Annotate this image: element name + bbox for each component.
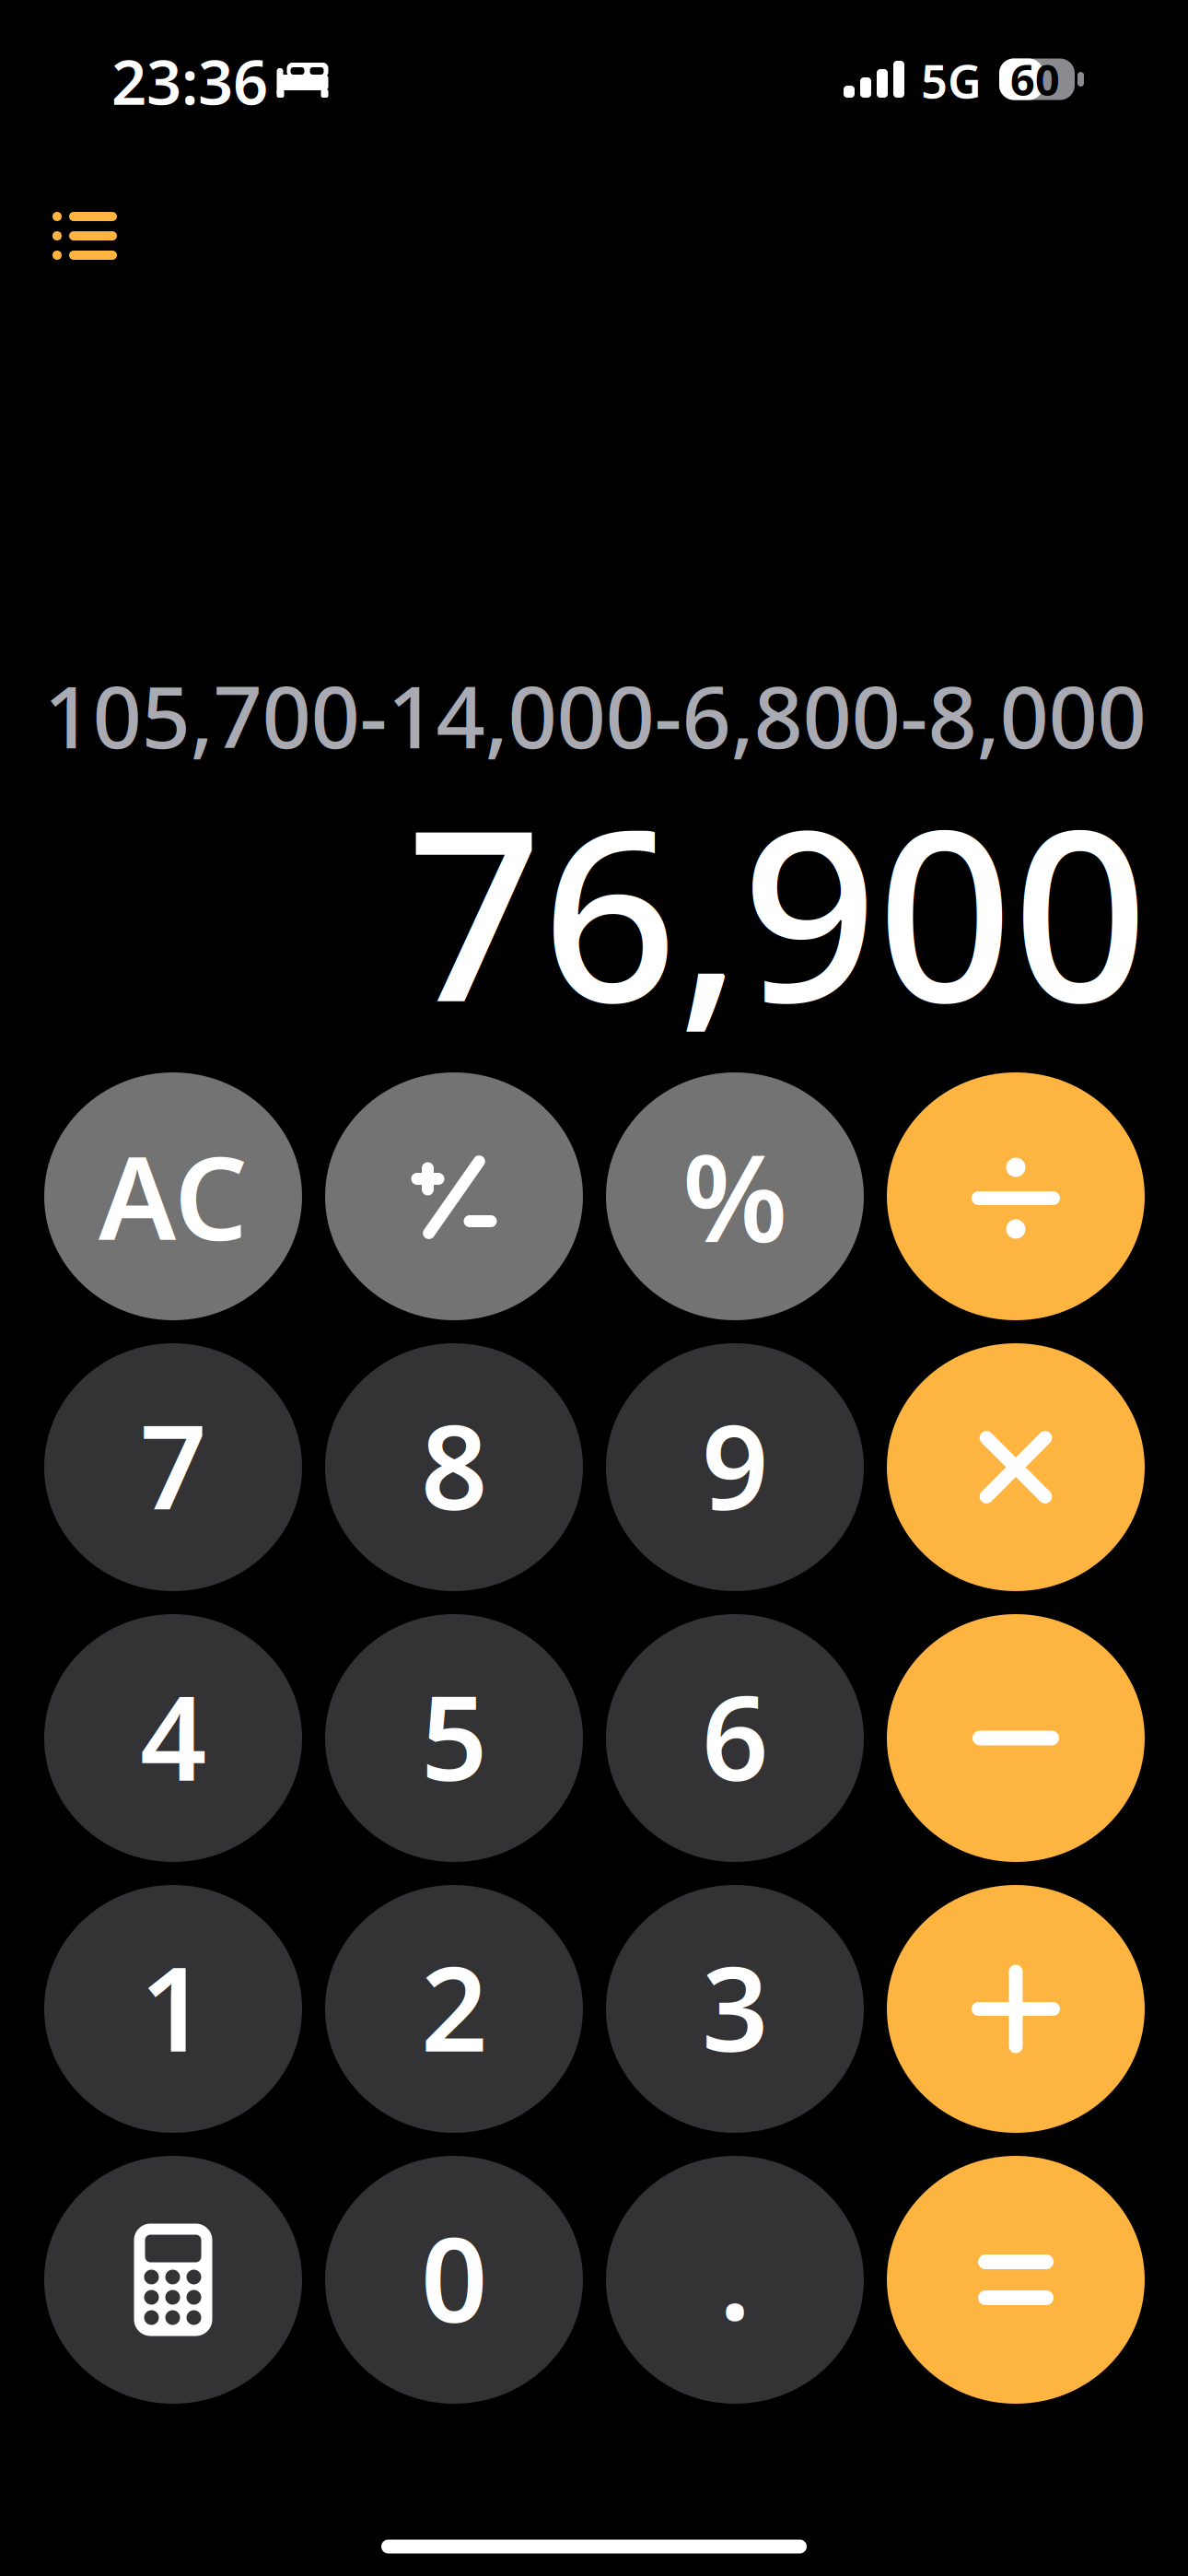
button[interactable]: Divide [887,1072,1145,1320]
button[interactable]: 7 [44,1343,302,1591]
staticText: 0 [421,2200,487,2355]
staticText: 4 [140,1658,206,1813]
staticText: 3 [702,1929,768,2084]
staticText: 76,900 [407,752,1148,1067]
button[interactable]: 2 [325,1885,583,2133]
button[interactable]: Plus minus [325,1072,583,1320]
button[interactable]: Subtract [887,1614,1145,1862]
button[interactable]: AC [44,1072,302,1320]
button[interactable]: Equals [887,2156,1145,2404]
button[interactable]: Add [887,1885,1145,2133]
staticText: AC [99,1119,248,1272]
staticText: 1 [140,1929,206,2084]
button[interactable]: 1 [44,1885,302,2133]
staticText: 2 [421,1929,487,2084]
staticText: % [682,1115,787,1275]
button[interactable]: 9 [606,1343,864,1591]
button[interactable]: Multiply [887,1343,1145,1591]
staticText: 9 [702,1387,768,1542]
button[interactable]: 3 [606,1885,864,2133]
staticText: 5G [921,49,982,111]
button[interactable]: History [16,171,154,300]
staticText: 23:36 [111,40,268,122]
button[interactable]: % [606,1072,864,1320]
staticText: 8 [421,1387,487,1542]
button[interactable]: Calculator [44,2156,302,2404]
staticText: 5 [421,1658,487,1813]
button[interactable]: 8 [325,1343,583,1591]
button[interactable]: 6 [606,1614,864,1862]
staticText: 7 [140,1387,206,1542]
staticText: . [719,2197,751,2352]
button[interactable]: 4 [44,1614,302,1862]
staticText: 60 [1010,51,1060,108]
button[interactable]: 5 [325,1614,583,1862]
button[interactable]: Decimal point [606,2156,864,2404]
staticText: 6 [702,1658,768,1813]
button[interactable]: 0 [325,2156,583,2404]
staticText: 105,700-14,000-6,800-8,000 [44,658,1146,772]
